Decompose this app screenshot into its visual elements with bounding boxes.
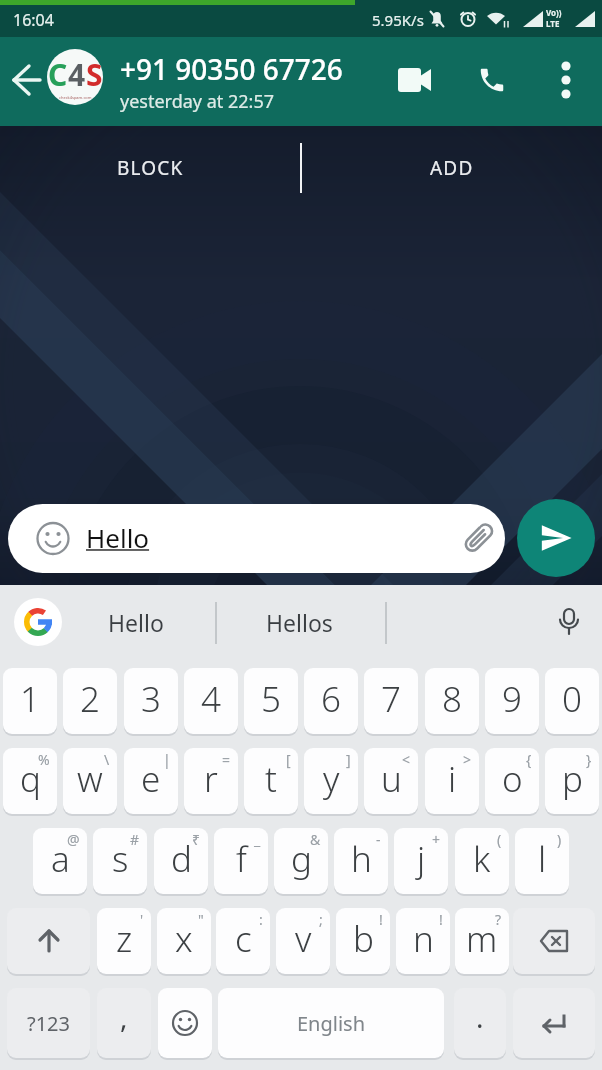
staticText: check4spam.com xyxy=(59,95,92,100)
button[interactable]: g xyxy=(274,828,328,894)
staticText: , xyxy=(120,998,128,1036)
button[interactable]: 0 xyxy=(545,668,599,734)
staticText: 8 xyxy=(442,675,462,723)
staticText: 4 xyxy=(68,54,86,95)
staticText: 6 xyxy=(321,675,341,723)
staticText: m xyxy=(466,915,498,963)
button[interactable]: 6 xyxy=(304,668,358,734)
button[interactable]: o xyxy=(485,748,539,814)
button[interactable] xyxy=(540,90,592,142)
staticText: 16:04 xyxy=(13,9,54,31)
button[interactable]: Hello xyxy=(72,590,200,655)
staticText: ? xyxy=(495,910,502,929)
button[interactable] xyxy=(158,988,212,1058)
button[interactable]: p xyxy=(545,748,599,814)
staticText: 0 xyxy=(562,675,582,723)
button[interactable]: 4 xyxy=(184,668,238,734)
staticText: # xyxy=(130,830,140,849)
staticText: | xyxy=(163,750,171,769)
staticText: 9 xyxy=(502,675,522,723)
button[interactable]: q xyxy=(3,748,57,814)
button[interactable]: l xyxy=(515,828,569,894)
staticText: 5 xyxy=(261,675,281,723)
button[interactable]: , xyxy=(97,988,151,1058)
button[interactable]: r xyxy=(184,748,238,814)
staticText: j xyxy=(417,835,426,883)
staticText: o xyxy=(502,755,523,803)
button[interactable] xyxy=(452,90,508,146)
staticText: ! xyxy=(379,910,383,929)
button[interactable]: y xyxy=(304,748,358,814)
staticText: i xyxy=(448,755,457,803)
staticText: l xyxy=(538,835,547,883)
button[interactable] xyxy=(14,598,62,646)
staticText: ] xyxy=(346,750,351,769)
button[interactable]: k xyxy=(455,828,509,894)
button[interactable] xyxy=(386,90,442,146)
staticText: " xyxy=(198,910,204,929)
staticText: @ xyxy=(67,830,80,849)
staticText: ! xyxy=(439,910,443,929)
staticText: u xyxy=(381,755,402,803)
button[interactable]: ?123 xyxy=(7,988,90,1058)
button[interactable]: Hellos xyxy=(235,590,363,655)
button[interactable] xyxy=(517,499,595,577)
staticText: 2 xyxy=(80,675,100,723)
button[interactable]: 2 xyxy=(63,668,117,734)
staticText: c xyxy=(235,915,252,963)
button[interactable]: English xyxy=(218,988,444,1058)
button[interactable]: h xyxy=(334,828,388,894)
staticText: & xyxy=(310,830,321,849)
button[interactable] xyxy=(7,908,90,974)
button[interactable]: d xyxy=(154,828,208,894)
staticText: h xyxy=(351,835,372,883)
button[interactable]: e xyxy=(124,748,178,814)
staticText: g xyxy=(291,835,312,883)
button[interactable]: u xyxy=(364,748,418,814)
staticText: % xyxy=(38,750,50,769)
button[interactable]: . xyxy=(454,988,506,1058)
staticText: Hello xyxy=(86,520,150,555)
staticText: 7 xyxy=(381,675,401,723)
staticText: [ xyxy=(286,750,291,769)
button[interactable] xyxy=(5,58,49,102)
button[interactable]: n xyxy=(396,908,450,974)
staticText: d xyxy=(171,835,192,883)
button[interactable]: BLOCK xyxy=(0,143,300,193)
staticText: : xyxy=(259,910,263,929)
button[interactable]: x xyxy=(157,908,211,974)
button[interactable]: Hello xyxy=(8,504,505,573)
button[interactable]: 9 xyxy=(485,668,539,734)
button[interactable]: 8 xyxy=(425,668,479,734)
staticText: +91 90350 67726 xyxy=(120,50,343,88)
staticText: 1 xyxy=(20,675,40,723)
button[interactable]: 1 xyxy=(3,668,57,734)
button[interactable]: f xyxy=(214,828,268,894)
button[interactable]: a xyxy=(33,828,87,894)
staticText: \ xyxy=(104,750,110,769)
button[interactable]: s xyxy=(93,828,147,894)
button[interactable]: b xyxy=(336,908,390,974)
staticText: 4 xyxy=(201,675,221,723)
button[interactable]: v xyxy=(276,908,330,974)
staticText: Hellos xyxy=(266,607,333,638)
button[interactable] xyxy=(545,598,593,646)
button[interactable]: 5 xyxy=(244,668,298,734)
button[interactable]: c xyxy=(216,908,270,974)
button[interactable]: C xyxy=(47,49,103,105)
button[interactable]: z xyxy=(97,908,151,974)
staticText: e xyxy=(141,755,161,803)
button[interactable]: 3 xyxy=(124,668,178,734)
button[interactable]: ADD xyxy=(302,143,602,193)
staticText: LTE xyxy=(546,18,560,29)
button[interactable]: w xyxy=(63,748,117,814)
button[interactable]: 7 xyxy=(364,668,418,734)
button[interactable]: t xyxy=(244,748,298,814)
button[interactable] xyxy=(513,988,595,1058)
button[interactable] xyxy=(513,908,595,974)
button[interactable]: j xyxy=(394,828,448,894)
button[interactable]: m xyxy=(455,908,509,974)
staticText: English xyxy=(297,1010,366,1037)
button[interactable]: i xyxy=(425,748,479,814)
staticText: ADD xyxy=(430,155,474,181)
